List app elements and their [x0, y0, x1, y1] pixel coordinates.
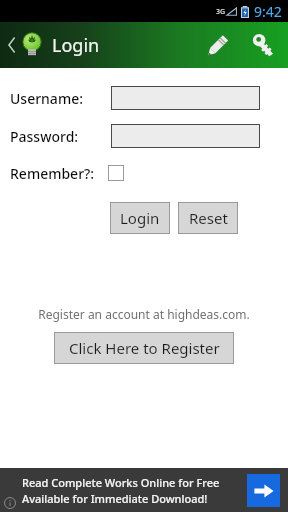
button[interactable]: Username:: [111, 86, 260, 110]
staticText: Reset: [189, 208, 228, 228]
staticText: Click Here to Register: [69, 338, 220, 358]
staticText: Available for Immediate Download!: [22, 491, 208, 506]
staticText: Register an account at highdeas.com.: [38, 306, 250, 322]
button[interactable]: Login: [110, 202, 170, 234]
button[interactable]: Ad info: [4, 497, 16, 509]
button[interactable]: Edit: [196, 22, 240, 68]
button[interactable]: Click Here to Register: [54, 332, 234, 364]
staticText: Remember?:: [10, 164, 95, 183]
button[interactable]: Password:: [111, 124, 260, 148]
staticText: 9:42: [254, 2, 282, 21]
button[interactable]: Remember me checkbox: [103, 160, 129, 186]
staticText: Password:: [10, 127, 79, 146]
button[interactable]: Key: [240, 22, 286, 68]
button[interactable]: Reset: [178, 202, 238, 234]
staticText: Login: [120, 208, 160, 228]
staticText: Read Complete Works Online for Free: [22, 475, 220, 490]
staticText: Username:: [10, 89, 83, 108]
button[interactable]: Read Complete Works Online for Free: [0, 468, 288, 512]
staticText: Login: [52, 33, 100, 58]
staticText: 3G: [216, 7, 226, 17]
button[interactable]: Open ad: [247, 474, 280, 507]
button[interactable]: Back: [5, 30, 19, 60]
